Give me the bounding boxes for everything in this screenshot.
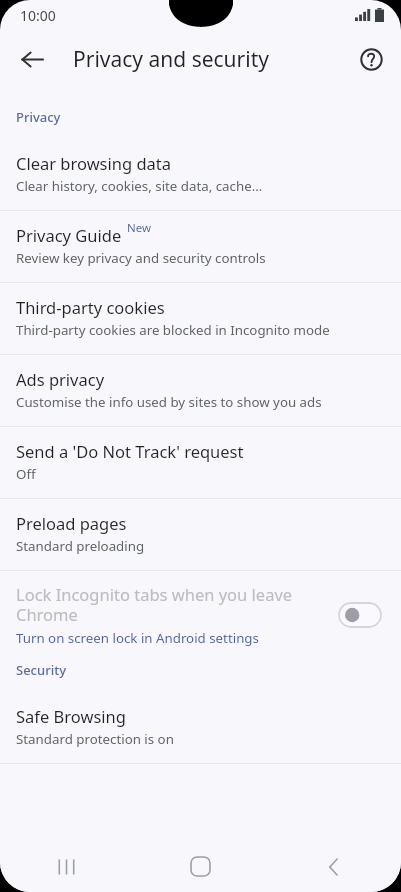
button[interactable]: Back	[8, 35, 56, 83]
staticText: Lock Incognito tabs when you leave Chrom…	[16, 583, 293, 626]
staticText: Privacy	[16, 108, 61, 126]
button[interactable]: Preload pages	[0, 499, 401, 570]
staticText: New	[127, 220, 152, 236]
button[interactable]: Ads privacy	[0, 355, 401, 426]
button[interactable]: Privacy Guide	[0, 211, 401, 282]
staticText: Third-party cookies are blocked in Incog…	[16, 321, 330, 339]
staticText: Standard protection is on	[16, 730, 174, 748]
staticText: Third-party cookies	[16, 296, 165, 318]
button[interactable]: Safe Browsing	[0, 692, 401, 763]
staticText: Send a 'Do Not Track' request	[16, 440, 244, 462]
staticText: Security	[16, 661, 66, 679]
button[interactable]: Lock Incognito tabs when you leave Chrom…	[0, 571, 401, 661]
staticText: Clear browsing data	[16, 152, 172, 174]
staticText: Preload pages	[16, 512, 127, 534]
staticText: Privacy Guide	[16, 224, 122, 246]
staticText: Customise the info used by sites to show…	[16, 393, 322, 411]
button[interactable]: Lock Incognito tabs toggle, off	[335, 599, 385, 631]
button[interactable]: Back	[267, 841, 401, 892]
staticText: Clear history, cookies, site data, cache…	[16, 177, 263, 195]
button[interactable]: Clear browsing data	[0, 139, 401, 210]
staticText: Privacy and security	[73, 45, 269, 74]
button[interactable]: Recent apps	[0, 841, 133, 892]
button[interactable]: Third-party cookies	[0, 283, 401, 354]
staticText: Ads privacy	[16, 368, 105, 390]
button[interactable]: Help	[349, 37, 393, 81]
staticText: Standard preloading	[16, 537, 145, 555]
staticText: Off	[16, 465, 36, 483]
staticText: 10:00	[20, 6, 56, 25]
staticText: Review key privacy and security controls	[16, 249, 266, 267]
staticText: Safe Browsing	[16, 705, 126, 727]
button[interactable]: Send a 'Do Not Track' request	[0, 427, 401, 498]
button[interactable]: Home	[133, 841, 267, 892]
staticText: Turn on screen lock in Android settings	[16, 629, 259, 647]
